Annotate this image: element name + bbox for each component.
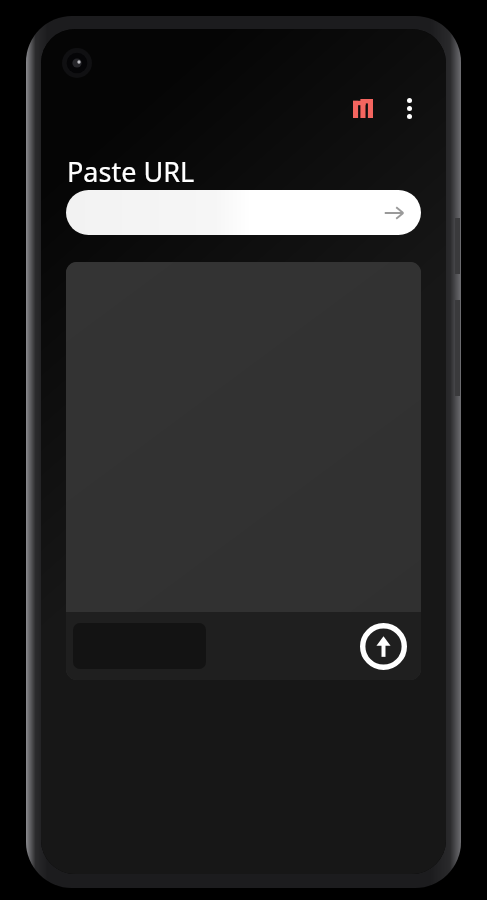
button[interactable]: More options [394,93,424,123]
button[interactable]: Download [358,621,408,671]
staticText: Paste URL [67,153,195,190]
button[interactable]: App logo [346,91,380,125]
button[interactable]: Paste URL input [66,190,421,235]
